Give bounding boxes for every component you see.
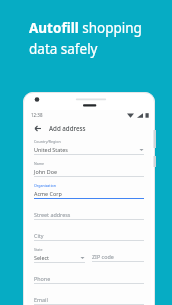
staticText: data safely	[29, 40, 98, 58]
staticText: Acme Corp	[34, 190, 62, 197]
button[interactable]: Country/Region	[34, 139, 144, 161]
button[interactable]: City	[34, 226, 144, 247]
button[interactable]: Street address	[34, 205, 144, 226]
staticText: Country/Region	[34, 139, 61, 144]
button[interactable]: Back	[31, 122, 43, 134]
staticText: State	[34, 247, 43, 252]
button[interactable]: ZIP code	[92, 247, 144, 268]
staticText: Select	[34, 254, 49, 261]
staticText: Autofill shopping	[29, 19, 142, 37]
button[interactable]: Name	[34, 161, 144, 183]
staticText: City	[34, 232, 44, 239]
button[interactable]: Email	[34, 290, 144, 305]
staticText: 12:38	[31, 112, 43, 118]
staticText: Add address	[49, 124, 86, 132]
staticText: Phone	[34, 275, 51, 282]
button[interactable]: Phone	[34, 269, 144, 290]
button[interactable]: Organization	[34, 183, 144, 205]
button[interactable]: State	[34, 247, 85, 269]
staticText: Organization	[34, 183, 56, 188]
staticText: Email	[34, 296, 48, 303]
staticText: United States	[34, 146, 68, 153]
staticText: John Doe	[34, 168, 58, 175]
staticText: Name	[34, 161, 45, 166]
staticText: Street address	[34, 211, 71, 218]
staticText: ZIP code	[92, 253, 114, 260]
